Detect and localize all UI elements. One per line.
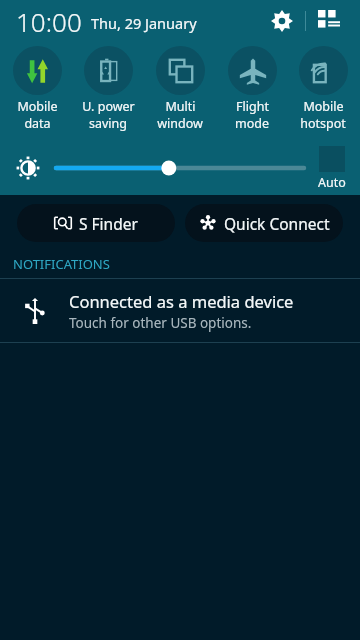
staticText: Quick Connect xyxy=(224,213,330,234)
button[interactable]: Auto xyxy=(304,146,360,191)
staticText: Auto xyxy=(318,174,346,191)
staticText: mode xyxy=(235,115,269,132)
button[interactable]: Multi xyxy=(145,46,215,132)
staticText: Thu, 29 January xyxy=(91,13,197,33)
staticText: U. power xyxy=(82,98,135,115)
button[interactable]: Mobile xyxy=(2,46,72,132)
button[interactable]: Edit quick settings xyxy=(312,4,346,38)
staticText: 10:00 xyxy=(16,4,82,39)
staticText: window xyxy=(157,115,203,132)
button[interactable]: Settings xyxy=(265,4,299,38)
staticText: hotspot xyxy=(300,115,346,132)
button[interactable]: S Finder xyxy=(17,204,175,242)
button[interactable]: Brightness xyxy=(56,153,304,183)
staticText: Mobile xyxy=(17,98,58,115)
button[interactable]: U. power xyxy=(73,46,143,132)
staticText: Flight xyxy=(236,98,269,115)
staticText: data xyxy=(24,115,51,132)
staticText: Touch for other USB options. xyxy=(69,314,252,332)
staticText: saving xyxy=(89,115,127,132)
staticText: Connected as a media device xyxy=(69,290,294,312)
button[interactable]: Connected as a media device xyxy=(0,279,360,342)
button[interactable]: Mobile xyxy=(288,46,358,132)
staticText: Multi xyxy=(165,98,196,115)
staticText: NOTIFICATIONS xyxy=(13,255,110,273)
staticText: Mobile xyxy=(303,98,344,115)
button[interactable]: Flight xyxy=(217,46,287,132)
button[interactable]: Quick Connect xyxy=(185,204,343,242)
staticText: S Finder xyxy=(79,213,138,234)
